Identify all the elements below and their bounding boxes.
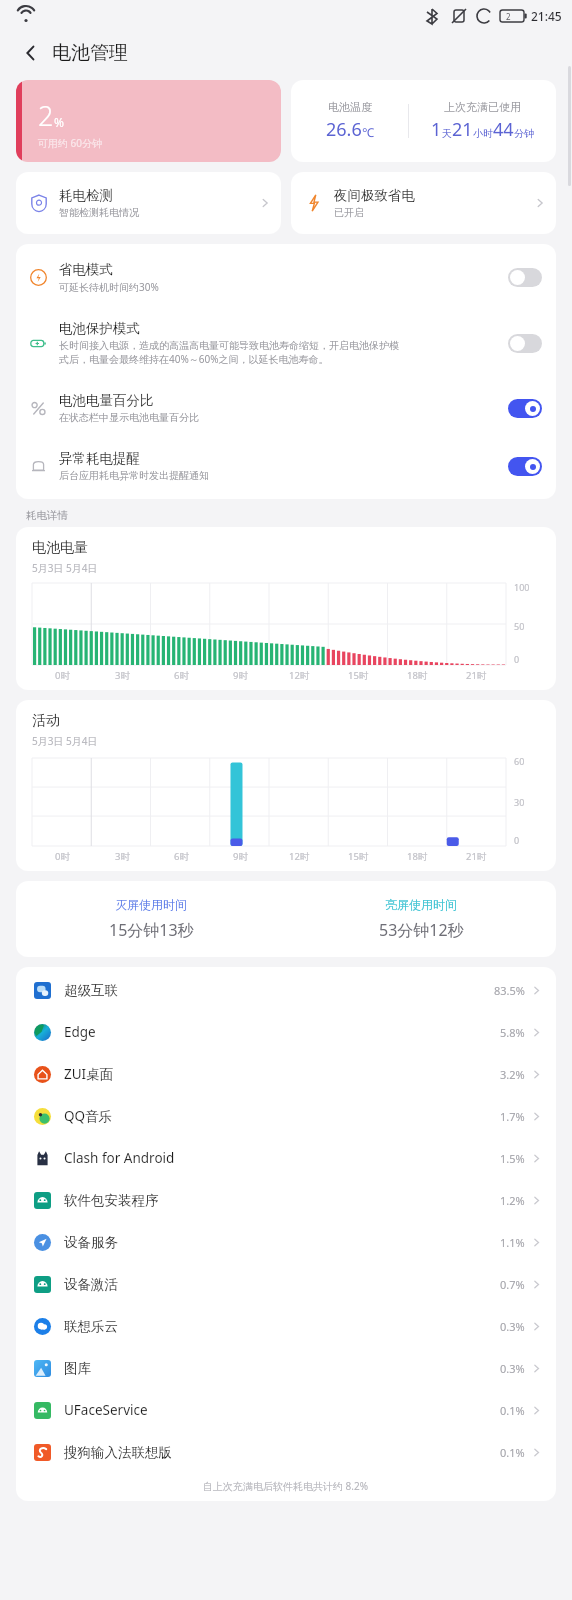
staticText: 0 (514, 834, 520, 846)
staticText: 2 (506, 11, 511, 22)
staticText: 上次充满已使用 (444, 100, 521, 114)
button[interactable]: 设备激活 (16, 1263, 556, 1305)
button[interactable]: On (508, 457, 542, 476)
staticText: 1 (431, 117, 442, 142)
staticText: 15时 (348, 669, 369, 682)
staticText: 活动 (32, 712, 60, 730)
button[interactable]: On (508, 399, 542, 418)
staticText: 可用约 60分钟 (38, 136, 103, 150)
button[interactable]: 电池电量百分比 (16, 379, 556, 437)
staticText: 可延长待机时间约30% (59, 280, 159, 294)
button[interactable]: UFaceService (16, 1389, 556, 1431)
staticText: 15时 (348, 850, 369, 863)
button[interactable]: 活动 (16, 700, 556, 871)
staticText: 超级互联 (64, 982, 494, 999)
staticText: Edge (64, 1023, 500, 1041)
staticText: 电池温度 (328, 100, 372, 114)
staticText: 18时 (407, 669, 428, 682)
staticText: 9时 (233, 850, 248, 863)
staticText: 长时间接入电源，造成的高温高电量可能导致电池寿命缩短，开启电池保护模 式后，电量… (59, 339, 399, 366)
staticText: 搜狗输入法联想版 (64, 1444, 500, 1461)
button[interactable]: QQ音乐 (16, 1095, 556, 1137)
staticText: 耗电详情 (26, 509, 68, 522)
staticText: 21时 (466, 850, 487, 863)
staticText: 0时 (55, 669, 70, 682)
button[interactable]: Clash for Android (16, 1137, 556, 1179)
button[interactable]: 灭屏使用时间 (16, 881, 556, 957)
button[interactable]: 图库 (16, 1347, 556, 1389)
staticText: 5.8% (500, 1025, 525, 1040)
staticText: 21时 (466, 669, 487, 682)
staticText: 已开启 (334, 206, 364, 219)
staticText: 12时 (289, 850, 310, 863)
staticText: 小时 (473, 127, 493, 140)
button[interactable]: 电池温度 (291, 80, 556, 162)
button[interactable]: 软件包安装程序 (16, 1179, 556, 1221)
button[interactable]: Off (508, 334, 542, 353)
staticText: 智能检测耗电情况 (59, 206, 139, 219)
button[interactable]: Off (508, 268, 542, 287)
button[interactable]: Edge (16, 1011, 556, 1053)
staticText: 0.3% (500, 1361, 525, 1376)
staticText: 6时 (174, 669, 189, 682)
staticText: 省电模式 (59, 261, 113, 278)
staticText: 1.7% (500, 1109, 525, 1124)
button[interactable]: 省电模式 (16, 248, 556, 307)
button[interactable]: 夜间极致省电 (291, 172, 556, 234)
button[interactable]: 2 (16, 80, 281, 162)
button[interactable]: 电池电量 (16, 527, 556, 690)
staticText: 1.5% (500, 1151, 525, 1166)
staticText: 5月3日 5月4日 (32, 734, 98, 748)
staticText: 9时 (233, 669, 248, 682)
staticText: 0.7% (500, 1277, 525, 1292)
staticText: UFaceService (64, 1401, 500, 1419)
staticText: ℃ (362, 124, 374, 140)
staticText: 图库 (64, 1360, 500, 1377)
staticText: 100 (514, 581, 530, 593)
staticText: 联想乐云 (64, 1318, 500, 1335)
staticText: 2 (38, 97, 54, 134)
button[interactable]: 异常耗电提醒 (16, 437, 556, 495)
staticText: 15分钟13秒 (109, 919, 194, 941)
staticText: 后台应用耗电异常时发出提醒通知 (59, 469, 209, 482)
staticText: 21 (452, 117, 473, 142)
staticText: 亮屏使用时间 (385, 897, 457, 912)
button[interactable]: 联想乐云 (16, 1305, 556, 1347)
staticText: 3时 (115, 669, 130, 682)
staticText: 设备激活 (64, 1276, 500, 1293)
staticText: 天 (442, 127, 452, 140)
staticText: 26.6 (326, 117, 362, 142)
staticText: 21:45 (531, 8, 562, 24)
staticText: % (54, 114, 64, 130)
staticText: QQ音乐 (64, 1107, 500, 1125)
staticText: 0.1% (500, 1403, 525, 1418)
staticText: 异常耗电提醒 (59, 450, 140, 467)
button[interactable]: 设备服务 (16, 1221, 556, 1263)
staticText: 3.2% (500, 1067, 525, 1082)
staticText: 0.3% (500, 1319, 525, 1334)
staticText: ZUI桌面 (64, 1065, 500, 1083)
staticText: 设备服务 (64, 1234, 500, 1251)
staticText: 软件包安装程序 (64, 1192, 500, 1209)
staticText: 电池管理 (52, 41, 128, 65)
staticText: 电池电量 (32, 539, 88, 557)
button[interactable]: 搜狗输入法联想版 (16, 1431, 556, 1473)
button[interactable]: 超级互联 (16, 969, 556, 1011)
staticText: 1.1% (500, 1235, 525, 1250)
staticText: 83.5% (494, 983, 525, 998)
staticText: 3时 (115, 850, 130, 863)
button[interactable]: 耗电检测 (16, 172, 281, 234)
staticText: 30 (514, 796, 525, 808)
staticText: 44 (493, 117, 514, 142)
staticText: 分钟 (514, 127, 534, 140)
staticText: 自上次充满电后软件耗电共计约 8.2% (203, 1479, 369, 1493)
button[interactable]: ZUI桌面 (16, 1053, 556, 1095)
staticText: 53分钟12秒 (379, 919, 464, 941)
staticText: 灭屏使用时间 (115, 897, 187, 912)
button[interactable]: 电池保护模式 (16, 307, 556, 379)
staticText: 12时 (289, 669, 310, 682)
staticText: 0.1% (500, 1445, 525, 1460)
button[interactable]: Back (14, 36, 48, 70)
staticText: 5月3日 5月4日 (32, 561, 98, 575)
staticText: 电池电量百分比 (59, 392, 154, 409)
